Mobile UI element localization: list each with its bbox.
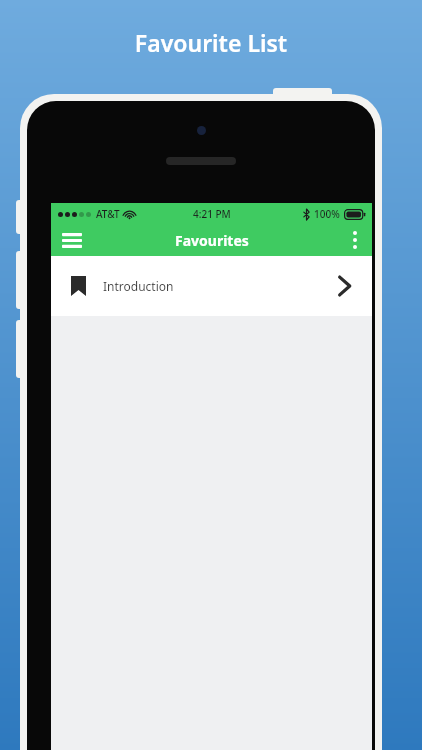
staticText: Introduction (103, 278, 174, 294)
staticText: Favourite List (0, 27, 422, 58)
button[interactable]: More options (338, 224, 372, 256)
button[interactable]: Introduction (51, 256, 372, 316)
button[interactable]: Open navigation menu (51, 224, 93, 256)
staticText: AT&T (96, 207, 120, 221)
staticText: Favourites (175, 231, 249, 250)
staticText: 4:21 PM (193, 207, 231, 221)
staticText: 100% (314, 207, 340, 221)
